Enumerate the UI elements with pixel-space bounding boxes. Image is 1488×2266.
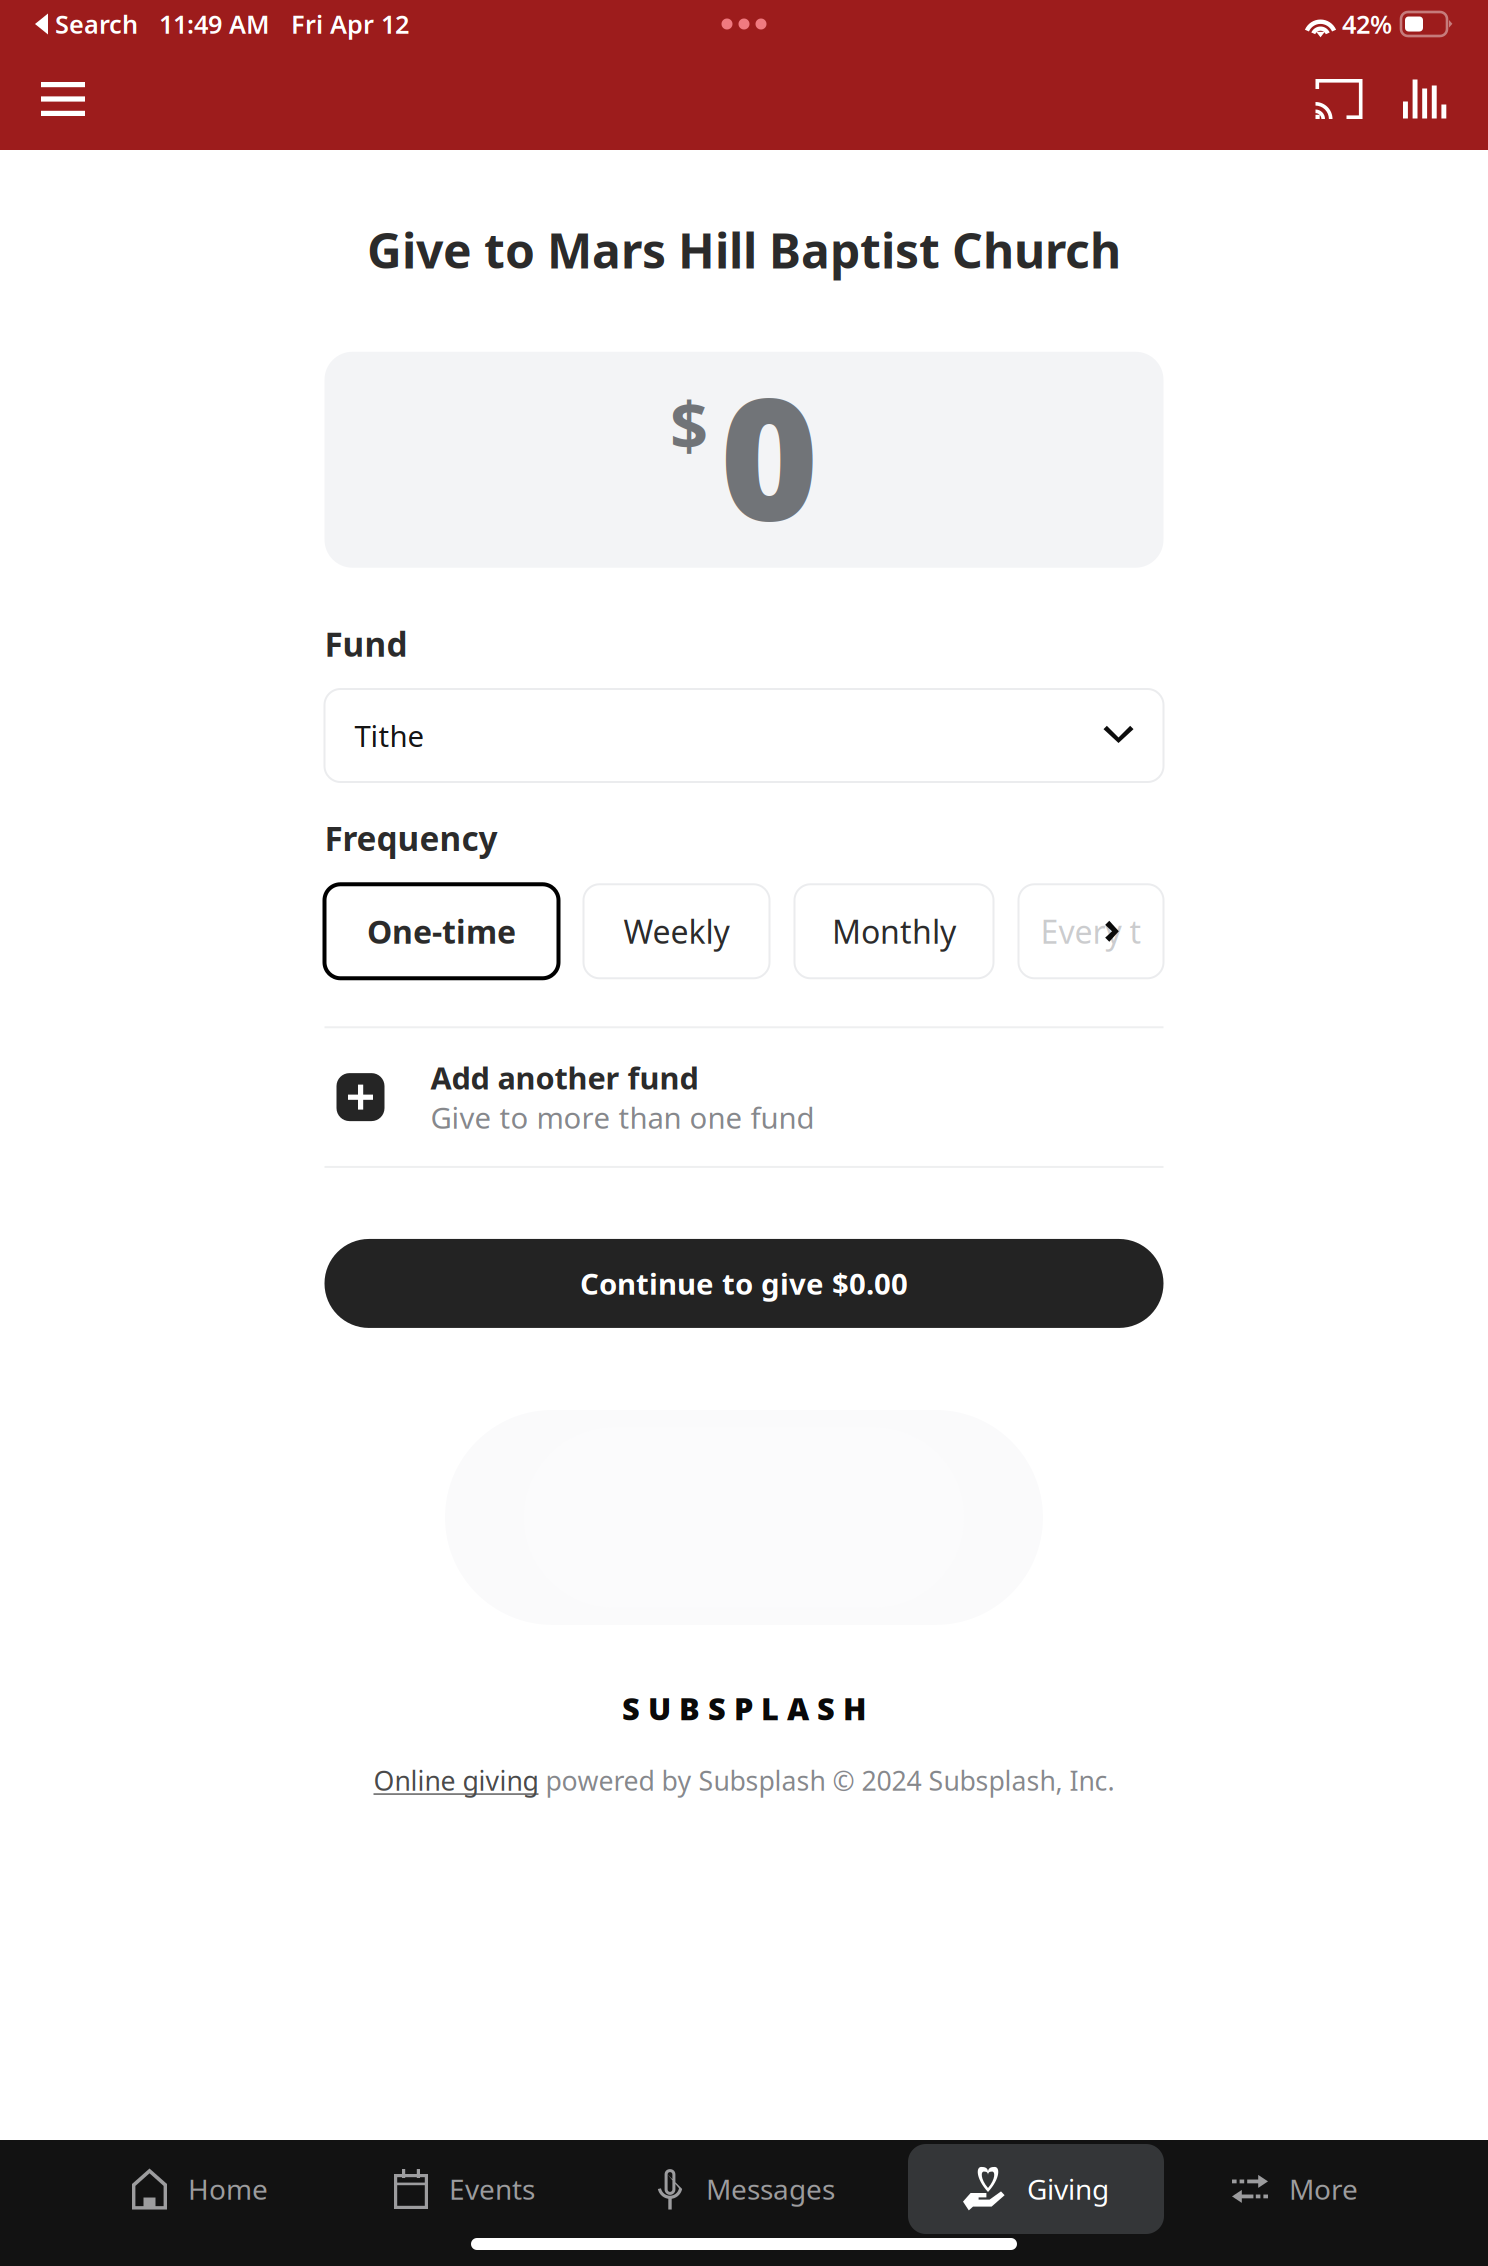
button[interactable]: Tithe [324, 689, 1163, 782]
staticText: Every t [1040, 910, 1141, 952]
button[interactable]: Monthly [794, 884, 993, 978]
staticText: 42% [1335, 7, 1392, 41]
staticText: Weekly [623, 910, 729, 952]
staticText: powered by Subsplash © 2024 Subsplash, I… [538, 1763, 1114, 1798]
button[interactable]: Add another fund [324, 1028, 1163, 1166]
staticText: Events [449, 2170, 535, 2208]
staticText: Monthly [832, 910, 956, 952]
staticText: S U B S P L A S H [622, 1688, 866, 1729]
staticText: One-time [367, 910, 516, 952]
staticText: More [1289, 2170, 1358, 2208]
button[interactable]: More [1232, 2144, 1358, 2234]
staticText: Continue to give $0.00 [580, 1264, 908, 1303]
button[interactable]: Giving [908, 2144, 1164, 2234]
staticText: Fri Apr 12 [270, 7, 409, 41]
staticText: Give to more than one fund [430, 1098, 814, 1137]
staticText: Frequency [324, 816, 497, 860]
button[interactable]: One-time [324, 884, 558, 978]
button[interactable]: Now playing [1382, 58, 1468, 140]
staticText: Home [188, 2170, 268, 2208]
button[interactable]: Home [132, 2144, 268, 2234]
staticText: Tithe [354, 716, 424, 755]
button[interactable]: Messages [655, 2144, 835, 2234]
staticText: Give to Mars Hill Baptist Church [367, 218, 1121, 282]
staticText: Giving [1027, 2170, 1109, 2208]
staticText: Add another fund [430, 1057, 698, 1098]
button[interactable]: Menu [20, 58, 106, 140]
button[interactable]: Cast to device [1296, 58, 1382, 140]
staticText: 11:49 AM [138, 7, 270, 41]
staticText: Messages [706, 2170, 835, 2208]
staticText: Online giving [373, 1763, 538, 1798]
staticText: $ [670, 380, 708, 469]
button[interactable]: Events [394, 2144, 535, 2234]
button[interactable]: Online giving [373, 1763, 538, 1798]
button[interactable]: Continue to give $0.00 [324, 1239, 1163, 1328]
button[interactable]: Every t [1018, 884, 1163, 978]
staticText: 0 [720, 343, 818, 566]
staticText: Fund [324, 622, 407, 666]
staticText: Search [48, 7, 138, 41]
button[interactable]: Weekly [583, 884, 769, 978]
